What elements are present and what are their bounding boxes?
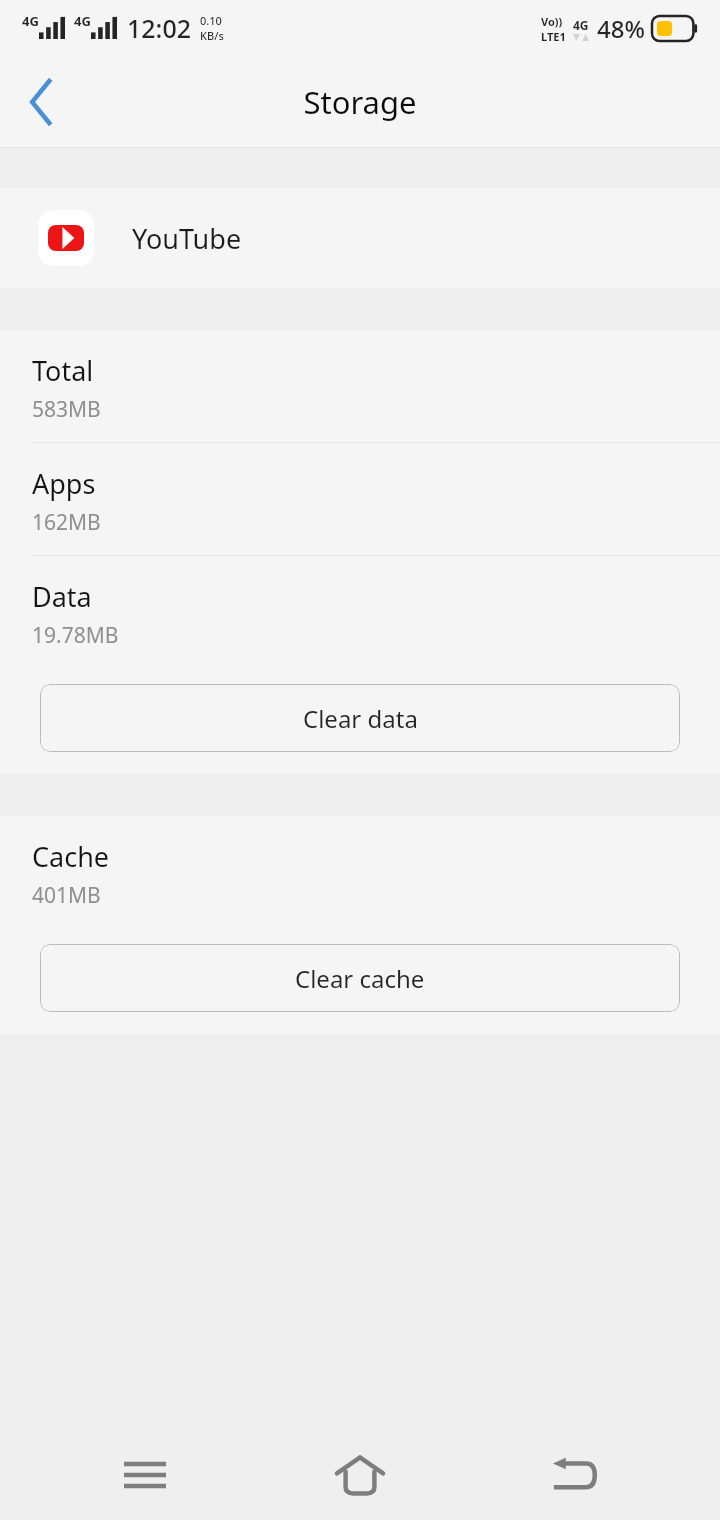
- staticText: YouTube: [132, 220, 242, 257]
- button[interactable]: Back: [0, 60, 84, 144]
- staticText: Apps: [32, 465, 96, 502]
- button[interactable]: YouTube: [0, 188, 720, 288]
- staticText: Data: [32, 578, 92, 615]
- button[interactable]: Back: [505, 1430, 645, 1520]
- staticText: 162MB: [32, 508, 101, 537]
- button[interactable]: Clear cache: [40, 944, 680, 1012]
- staticText: 583MB: [32, 395, 101, 424]
- staticText: 12:02: [127, 11, 192, 45]
- staticText: 4G: [74, 12, 91, 30]
- button[interactable]: Recent apps: [75, 1430, 215, 1520]
- button[interactable]: Cache: [0, 816, 720, 928]
- staticText: Storage: [303, 81, 417, 123]
- staticText: 0.10: [200, 13, 222, 28]
- staticText: Clear data: [303, 702, 418, 735]
- staticText: Clear cache: [295, 962, 425, 995]
- button[interactable]: Data: [0, 556, 720, 668]
- staticText: LTE1: [541, 29, 566, 44]
- staticText: 401MB: [32, 881, 101, 910]
- button[interactable]: Home: [290, 1430, 430, 1520]
- button[interactable]: Apps: [0, 443, 720, 555]
- staticText: Cache: [32, 838, 110, 875]
- button[interactable]: Total: [0, 330, 720, 442]
- staticText: 48%: [597, 12, 645, 45]
- button[interactable]: Clear data: [40, 684, 680, 752]
- staticText: Total: [32, 352, 94, 389]
- staticText: 19.78MB: [32, 621, 119, 650]
- staticText: Vo)): [541, 14, 563, 29]
- staticText: 4G: [573, 17, 589, 33]
- staticText: KB/s: [200, 28, 224, 43]
- staticText: 4G: [22, 12, 39, 30]
